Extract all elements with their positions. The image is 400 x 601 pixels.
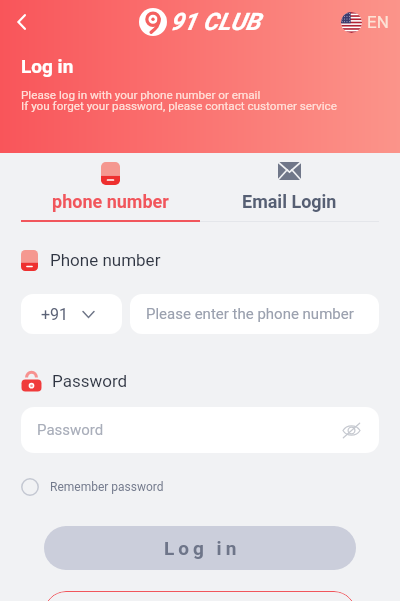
button[interactable]: phone number: [21, 153, 200, 220]
staticText: Please enter the phone number: [146, 305, 354, 323]
button[interactable]: Please enter the phone number: [130, 294, 379, 334]
staticText: +91: [41, 305, 69, 324]
staticText: Log in: [164, 537, 241, 559]
button[interactable]: Register: [44, 591, 356, 601]
button[interactable]: +91: [21, 294, 122, 334]
staticText: Password: [52, 371, 128, 391]
staticText: 91 CLUB: [170, 8, 261, 36]
button[interactable]: Show password: [339, 418, 363, 442]
staticText: Phone number: [50, 250, 161, 270]
staticText: Log in: [21, 55, 74, 77]
staticText: Password: [37, 421, 104, 439]
button[interactable]: Back: [8, 8, 36, 36]
button[interactable]: Password: [21, 407, 379, 453]
staticText: EN: [367, 12, 389, 32]
button[interactable]: EN: [341, 8, 389, 36]
button[interactable]: Remember password: [21, 477, 164, 497]
button[interactable]: Email Login: [200, 153, 379, 220]
staticText: Remember password: [50, 480, 164, 494]
staticText: Please log in with your phone number or …: [21, 88, 337, 113]
button[interactable]: Log in: [44, 526, 356, 570]
staticText: phone number: [52, 191, 169, 212]
staticText: Email Login: [242, 191, 337, 212]
